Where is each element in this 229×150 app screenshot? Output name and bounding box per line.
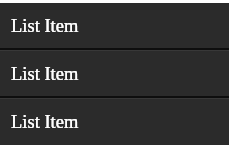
button[interactable]: List Item — [0, 3, 229, 49]
staticText: List Item — [11, 16, 79, 36]
staticText: List Item — [11, 64, 79, 84]
staticText: List Item — [11, 64, 79, 84]
button[interactable]: List Item — [0, 99, 229, 145]
staticText: List Item — [11, 16, 79, 36]
staticText: List Item — [11, 112, 79, 132]
button[interactable]: List Item — [0, 51, 229, 97]
staticText: List Item — [11, 112, 79, 132]
